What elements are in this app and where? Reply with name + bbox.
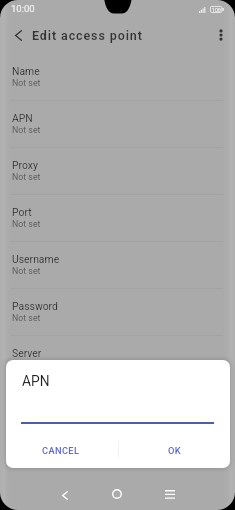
staticText: Password <box>12 300 58 312</box>
staticText: Username <box>12 253 60 265</box>
staticText: Name <box>12 65 40 77</box>
staticText: 10:00 <box>11 3 35 14</box>
button[interactable]: APN <box>0 101 235 148</box>
staticText: Port <box>12 206 32 218</box>
staticText: Not set <box>12 172 41 182</box>
staticText: Not set <box>12 125 41 135</box>
button[interactable]: Name <box>0 54 235 101</box>
staticText: Server <box>12 347 42 359</box>
button[interactable]: OK <box>121 439 228 461</box>
button[interactable]: Home <box>100 479 134 509</box>
button[interactable]: Username <box>0 242 235 289</box>
button[interactable]: Back <box>48 479 82 509</box>
staticText: Not set <box>12 78 41 88</box>
staticText: 100 <box>212 7 221 13</box>
staticText: Not set <box>12 313 41 323</box>
staticText: Not set <box>12 266 41 276</box>
button[interactable]: Recent apps <box>153 479 187 509</box>
staticText: OK <box>168 445 181 456</box>
button[interactable]: More options <box>206 22 235 54</box>
staticText: APN <box>22 373 50 389</box>
staticText: CANCEL <box>42 445 80 456</box>
staticText: Edit access point <box>32 28 143 43</box>
staticText: APN <box>12 112 33 124</box>
button[interactable]: Server <box>0 336 235 383</box>
staticText: Not set <box>12 219 41 229</box>
button[interactable]: Navigate up <box>0 22 30 54</box>
button[interactable]: Port <box>0 195 235 242</box>
staticText: Proxy <box>12 159 38 171</box>
button[interactable]: CANCEL <box>7 439 114 461</box>
button[interactable]: Password <box>0 289 235 336</box>
button[interactable]: Proxy <box>0 148 235 195</box>
